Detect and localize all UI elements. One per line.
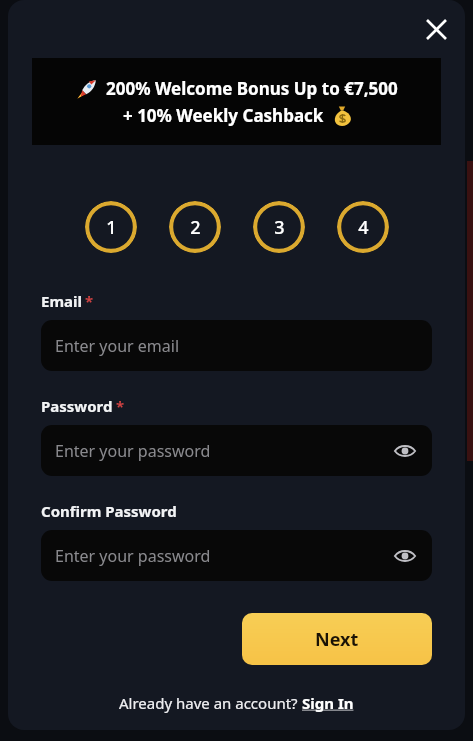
staticText: 1 bbox=[106, 215, 117, 240]
staticText: Sign In bbox=[302, 693, 354, 713]
staticText: * bbox=[116, 396, 125, 416]
staticText: 3 bbox=[274, 215, 285, 240]
button[interactable]: Show password bbox=[390, 436, 420, 466]
staticText: 200% Welcome Bonus Up to €7,500 bbox=[106, 77, 398, 100]
button[interactable]: 200% Welcome Bonus Up to €7,500 bbox=[32, 58, 441, 145]
staticText: 4 bbox=[358, 215, 369, 240]
staticText: Enter your password bbox=[55, 440, 211, 462]
button[interactable]: 1 bbox=[85, 201, 137, 253]
staticText: Already have an account? bbox=[119, 693, 302, 713]
staticText: 2 bbox=[190, 215, 201, 240]
button[interactable]: 2 bbox=[169, 201, 221, 253]
button[interactable]: Enter your password bbox=[41, 425, 432, 476]
button[interactable]: 4 bbox=[337, 201, 389, 253]
staticText: + 10% Weekly Cashback bbox=[123, 104, 324, 127]
button[interactable]: Enter your email bbox=[41, 320, 432, 371]
staticText: Next bbox=[315, 627, 359, 652]
button[interactable]: 3 bbox=[253, 201, 305, 253]
button[interactable]: Close bbox=[418, 11, 454, 47]
staticText: Confirm Password bbox=[41, 501, 177, 521]
button[interactable]: Sign In bbox=[302, 693, 354, 713]
staticText: * bbox=[85, 291, 94, 311]
button[interactable]: Next bbox=[242, 613, 432, 665]
staticText: Email bbox=[41, 291, 82, 311]
button[interactable]: Show password bbox=[390, 541, 420, 571]
staticText: Enter your email bbox=[55, 335, 180, 357]
button[interactable]: Enter your password bbox=[41, 530, 432, 581]
staticText: Enter your password bbox=[55, 545, 211, 567]
staticText: Password bbox=[41, 396, 113, 416]
